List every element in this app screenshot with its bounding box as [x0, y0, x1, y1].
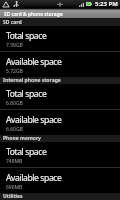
button[interactable]: Total space — [0, 84, 120, 109]
staticText: Total space — [6, 146, 47, 158]
button[interactable]: Total space — [0, 142, 120, 167]
staticText: 6.60GB — [6, 126, 23, 133]
button[interactable]: Available space — [0, 52, 120, 77]
staticText: Available space — [6, 56, 62, 68]
button[interactable]: Total space — [0, 26, 120, 51]
staticText: 748MB — [6, 158, 23, 165]
staticText: Available space — [6, 114, 62, 126]
staticText: 7.59GB — [6, 42, 23, 49]
staticText: Available space — [6, 172, 62, 184]
staticText: SD card — [3, 19, 22, 26]
staticText: Internal phone storage — [3, 77, 61, 84]
staticText: 696MB — [6, 184, 23, 191]
staticText: Total space — [6, 88, 47, 100]
staticText: 6.60GB — [6, 100, 23, 107]
staticText: Total space — [6, 30, 47, 42]
button[interactable]: Available space — [0, 110, 120, 135]
staticText: 5:23 PM — [95, 0, 118, 8]
staticText: Utilities — [3, 193, 23, 200]
staticText: SD card & phone storage — [4, 11, 63, 18]
staticText: Phone memory — [3, 135, 41, 142]
staticText: 5.72GB — [6, 68, 23, 75]
button[interactable]: Available space — [0, 168, 120, 193]
